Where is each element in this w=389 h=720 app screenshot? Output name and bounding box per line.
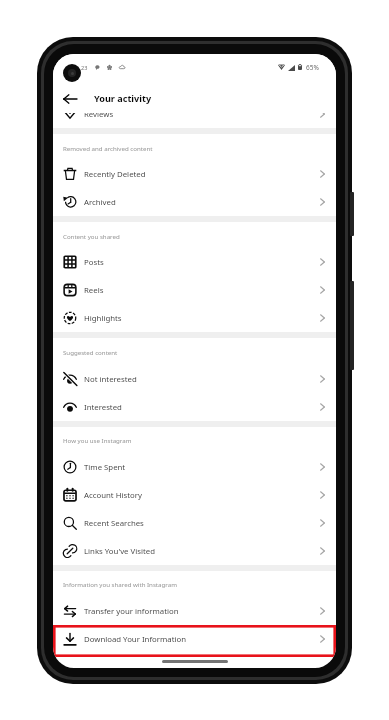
button[interactable]: Recent Searches (53, 509, 336, 537)
staticText: Account History (84, 490, 142, 501)
staticText: Archived (84, 197, 116, 208)
button[interactable]: Reels (53, 276, 336, 304)
staticText: Content you shared (63, 232, 120, 240)
staticText: Time Spent (84, 462, 126, 473)
button[interactable]: Not interested (53, 365, 336, 393)
staticText: Information you shared with Instagram (63, 580, 177, 588)
button[interactable]: Posts (53, 248, 336, 276)
staticText: Reels (84, 285, 104, 296)
staticText: Not interested (84, 374, 137, 385)
staticText: Transfer your information (84, 606, 179, 617)
staticText: Your activity (94, 92, 152, 104)
button[interactable]: Archived (53, 188, 336, 216)
staticText: Download Your Information (84, 634, 187, 645)
staticText: 23 (81, 64, 88, 72)
button[interactable]: Transfer your information (53, 597, 336, 625)
staticText: How you use Instagram (63, 436, 132, 444)
button[interactable]: Reviews (53, 100, 336, 128)
staticText: Suggested content (63, 348, 118, 356)
staticText: 65% (306, 63, 319, 72)
staticText: Posts (84, 257, 104, 268)
button[interactable]: Links You've Visited (53, 537, 336, 565)
button[interactable]: Time Spent (53, 453, 336, 481)
button[interactable]: Recently Deleted (53, 160, 336, 188)
button[interactable]: Account History (53, 481, 336, 509)
button[interactable]: Interested (53, 393, 336, 421)
staticText: Highlights (84, 313, 122, 324)
staticText: Reviews (84, 109, 114, 120)
button[interactable]: Back (58, 87, 81, 110)
staticText: Recently Deleted (84, 169, 146, 180)
staticText: Interested (84, 402, 122, 413)
button[interactable]: Download Your Information (53, 625, 336, 653)
staticText: Recent Searches (84, 518, 144, 529)
staticText: Removed and archived content (63, 144, 153, 152)
staticText: Links You've Visited (84, 546, 155, 557)
button[interactable]: Highlights (53, 304, 336, 332)
